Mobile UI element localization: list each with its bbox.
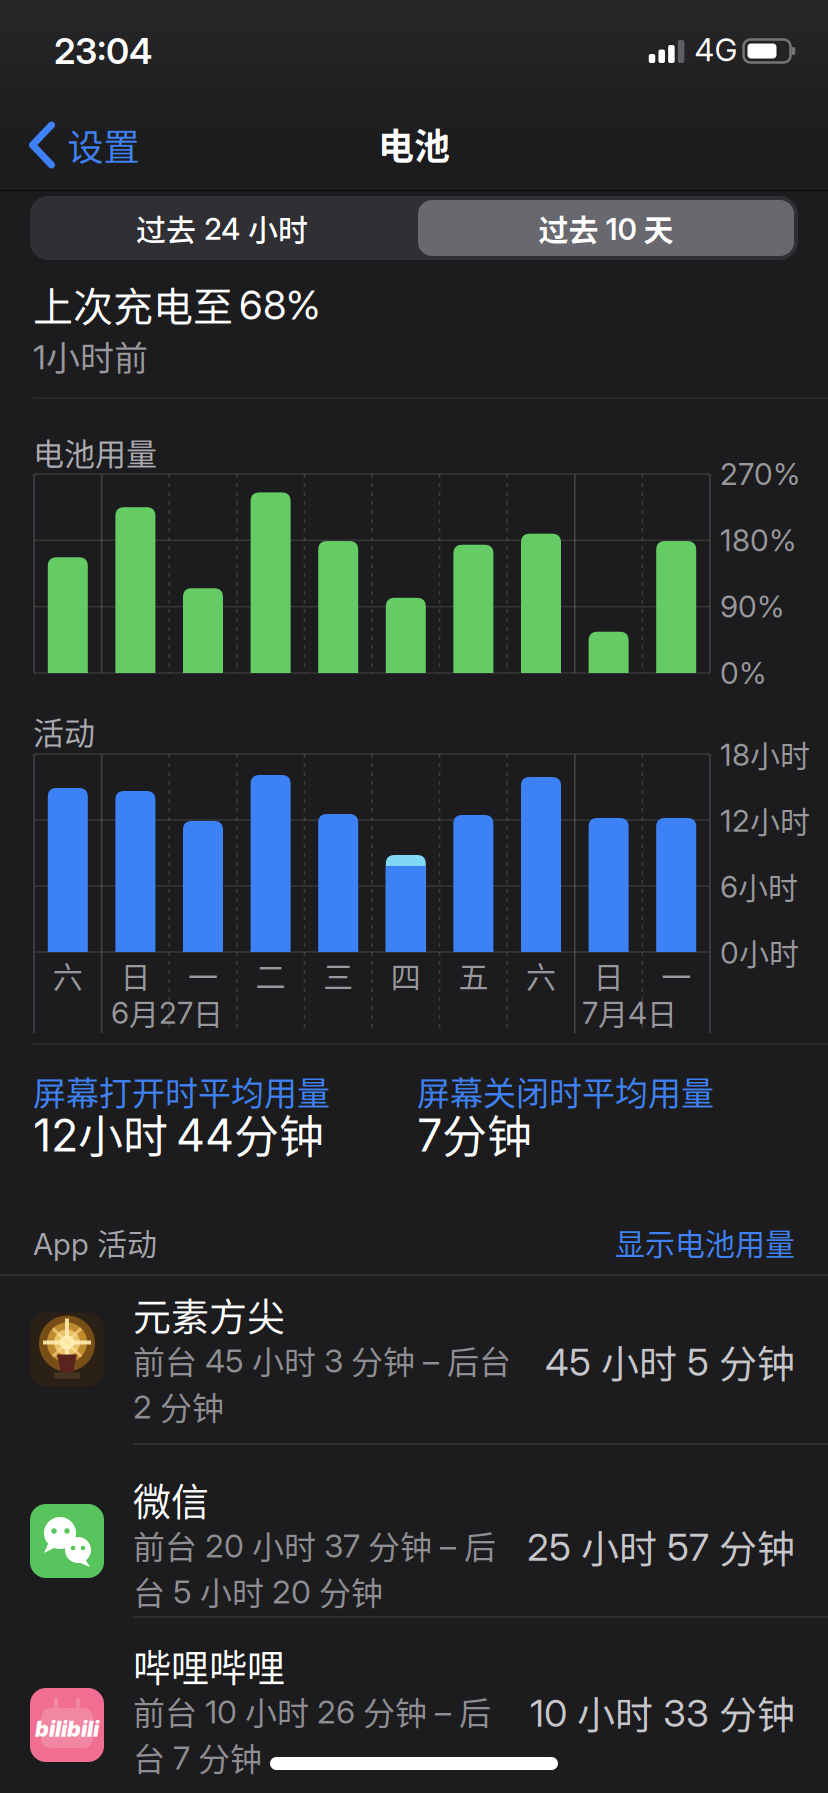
button[interactable]: 设置 [22,115,150,175]
staticText: bilibili [35,1716,99,1742]
staticText: 电池用量 [33,430,157,474]
staticText: 25 小时 57 分钟 [527,1518,795,1573]
staticText: 过去 24 小时 [136,206,308,250]
staticText: 台 5 小时 20 分钟 [133,1568,383,1614]
staticText: 90% [720,588,784,625]
button[interactable]: 微信 [0,1444,828,1617]
staticText: 前台 45 小时 3 分钟 – 后台 [133,1337,511,1383]
staticText: 23:04 [54,29,152,73]
button[interactable]: bilibili [0,1617,828,1793]
staticText: 日 [594,953,624,997]
staticText: 6月27日 [111,990,223,1034]
staticText: 18小时 [720,732,810,776]
staticText: 二 [256,953,286,997]
staticText: 过去 10 天 [538,206,673,250]
staticText: 1小时前 [33,331,148,381]
staticText: 180% [720,522,796,558]
staticText: 7分钟 [417,1101,532,1167]
staticText: 一 [661,953,691,997]
staticText: 元素方尖 [133,1286,285,1341]
staticText: 电池 [378,118,450,170]
button[interactable]: 显示电池用量 [495,1220,795,1264]
staticText: 2 分钟 [133,1383,224,1429]
staticText: 哔哩哔哩 [133,1637,285,1692]
staticText: 三 [323,953,353,997]
staticText: 屏幕关闭时平均用量 [417,1067,714,1115]
staticText: 前台 20 小时 37 分钟 – 后 [133,1522,496,1568]
staticText: 4G [694,31,737,69]
button[interactable]: 元素方尖 [0,1275,828,1444]
staticText: 台 7 分钟 [133,1734,262,1780]
staticText: 12小时 [720,798,810,842]
button[interactable]: 过去 10 天 [416,196,796,260]
staticText: 7月4日 [582,990,677,1034]
staticText: 上次充电至 68% [33,275,320,333]
staticText: 10 小时 33 分钟 [530,1684,795,1739]
staticText: 微信 [133,1471,209,1526]
button[interactable]: 过去 24 小时 [32,196,412,260]
staticText: 6小时 [720,864,798,908]
staticText: 0% [720,655,766,691]
staticText: 前台 10 小时 26 分钟 – 后 [133,1688,491,1734]
staticText: 活动 [33,709,95,753]
staticText: 0小时 [720,930,799,974]
staticText: 六 [526,953,556,997]
staticText: 六 [53,953,83,997]
staticText: App 活动 [33,1220,157,1264]
staticText: 日 [120,953,150,997]
staticText: 45 小时 5 分钟 [545,1333,795,1388]
staticText: 五 [458,953,488,997]
staticText: 12小时 44分钟 [33,1101,324,1167]
staticText: 设置 [67,119,139,171]
staticText: 显示电池用量 [615,1220,795,1264]
staticText: 270% [720,456,800,492]
staticText: 一 [188,953,218,997]
staticText: 屏幕打开时平均用量 [33,1067,330,1115]
staticText: 四 [391,953,421,997]
